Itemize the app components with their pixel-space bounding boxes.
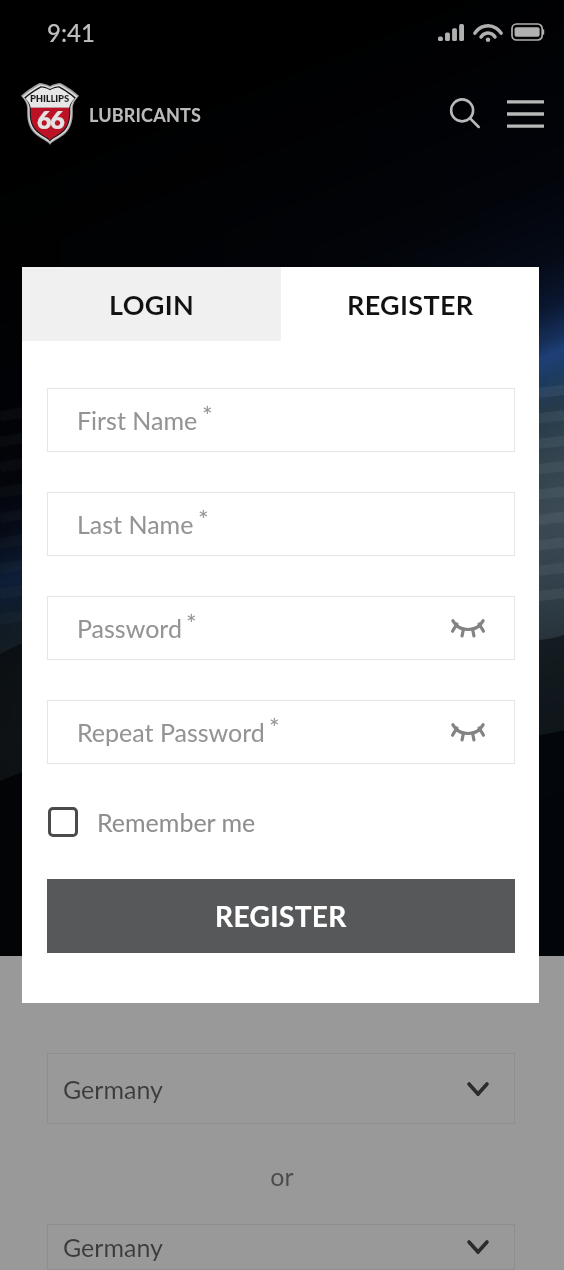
button[interactable]: Show password xyxy=(445,709,491,755)
button[interactable]: LOGIN xyxy=(22,267,281,341)
staticText: or xyxy=(0,1161,564,1191)
button[interactable]: REGISTER xyxy=(47,879,515,953)
staticText: REGISTER xyxy=(347,288,474,320)
button[interactable]: Password xyxy=(47,596,515,660)
staticText: * xyxy=(202,400,213,430)
button[interactable]: Search xyxy=(438,87,492,141)
staticText: LUBRICANTS xyxy=(89,104,202,126)
staticText: PHILLIPS xyxy=(30,93,70,104)
staticText: Last Name xyxy=(77,509,194,539)
staticText: 9:41 xyxy=(47,18,95,47)
button[interactable]: REGISTER xyxy=(281,267,539,341)
button[interactable]: Remember me xyxy=(47,807,515,837)
button[interactable]: Germany xyxy=(47,1053,515,1124)
button[interactable]: Repeat Password xyxy=(47,700,515,764)
staticText: * xyxy=(198,504,209,534)
staticText: Remember me xyxy=(97,807,256,837)
staticText: REGISTER xyxy=(215,899,347,933)
button[interactable]: First Name xyxy=(47,388,515,452)
staticText: Germany xyxy=(63,1074,163,1104)
button[interactable]: Last Name xyxy=(47,492,515,556)
staticText: 66 xyxy=(37,104,64,134)
staticText: Password xyxy=(77,613,182,643)
staticText: Germany xyxy=(63,1232,163,1262)
staticText: * xyxy=(186,608,197,638)
staticText: * xyxy=(269,712,280,742)
button[interactable]: Menu xyxy=(498,87,552,141)
button[interactable]: Germany xyxy=(47,1224,515,1270)
staticText: LOGIN xyxy=(109,288,195,320)
button[interactable]: Show password xyxy=(445,605,491,651)
staticText: First Name xyxy=(77,405,198,435)
staticText: Repeat Password xyxy=(77,717,265,747)
